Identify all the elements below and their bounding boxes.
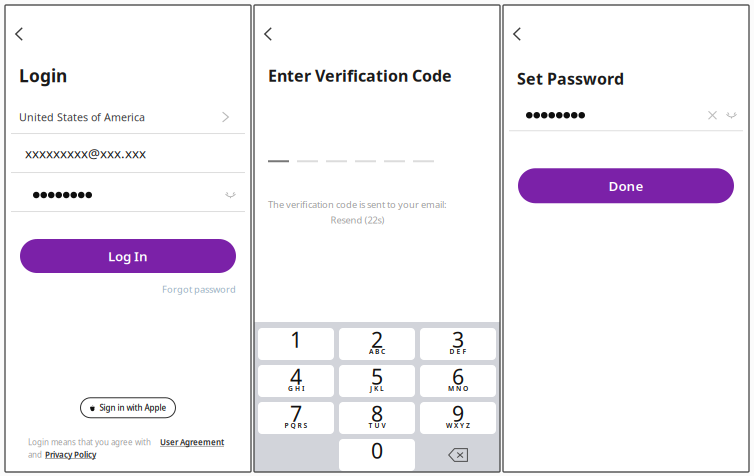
staticText: 0 bbox=[371, 436, 383, 465]
button[interactable]: Resend (22s) bbox=[330, 214, 384, 226]
staticText: 8 bbox=[371, 399, 383, 428]
staticText: The verification code is sent to your em… bbox=[268, 198, 447, 211]
staticText: 5 bbox=[371, 362, 383, 391]
button[interactable]: 7 bbox=[258, 402, 334, 434]
staticText: xxxxxxxxx@xxx.xxx bbox=[25, 144, 146, 162]
staticText: 9 bbox=[452, 399, 464, 428]
button[interactable]: Back bbox=[8, 24, 30, 44]
button[interactable]: Done bbox=[518, 168, 734, 203]
staticText: Log In bbox=[108, 247, 148, 265]
button[interactable]: United States of America bbox=[5, 101, 251, 134]
staticText: T U V bbox=[368, 421, 385, 430]
staticText: W X Y Z bbox=[446, 421, 470, 430]
button[interactable]: 9 bbox=[420, 402, 496, 434]
staticText: D E F bbox=[449, 347, 466, 356]
button[interactable]: Clear bbox=[708, 111, 717, 120]
staticText: Login means that you agree with bbox=[28, 437, 151, 447]
staticText: Sign in with Apple bbox=[99, 402, 166, 413]
staticText: 1 bbox=[290, 325, 302, 354]
button[interactable]: Forgot password bbox=[5, 280, 251, 298]
button[interactable]: Log In bbox=[20, 239, 236, 273]
button[interactable]: 5 bbox=[339, 365, 415, 397]
button[interactable]: Back bbox=[257, 24, 279, 44]
staticText: M N O bbox=[448, 384, 468, 393]
staticText: Login bbox=[19, 64, 67, 87]
staticText: A B C bbox=[369, 347, 385, 356]
staticText: User Agreement bbox=[160, 437, 224, 447]
staticText: and bbox=[28, 449, 42, 460]
button[interactable]: 2 bbox=[339, 328, 415, 360]
staticText: 4 bbox=[290, 362, 302, 391]
staticText: P Q R S bbox=[284, 421, 307, 430]
button[interactable]: 4 bbox=[258, 365, 334, 397]
staticText: Forgot password bbox=[162, 283, 236, 295]
staticText: Set Password bbox=[517, 68, 624, 89]
button[interactable]: Delete bbox=[420, 439, 496, 471]
button[interactable]: Sign in with Apple bbox=[80, 398, 175, 418]
button[interactable]: 1 bbox=[258, 328, 334, 360]
staticText: 2 bbox=[371, 325, 383, 354]
staticText: J K L bbox=[370, 384, 384, 393]
button[interactable]: Back bbox=[506, 24, 528, 44]
staticText: 7 bbox=[290, 399, 302, 428]
button[interactable]: 3 bbox=[420, 328, 496, 360]
button[interactable]: 8 bbox=[339, 402, 415, 434]
button[interactable]: 0 bbox=[339, 439, 415, 471]
staticText: 6 bbox=[452, 362, 464, 391]
staticText: United States of America bbox=[19, 110, 145, 124]
staticText: Resend (22s) bbox=[330, 214, 384, 226]
button[interactable]: 6 bbox=[420, 365, 496, 397]
staticText: Enter Verification Code bbox=[268, 65, 452, 86]
staticText: G H I bbox=[288, 384, 304, 393]
button[interactable]: Show password bbox=[726, 111, 737, 119]
staticText: Done bbox=[608, 177, 643, 195]
staticText: 3 bbox=[452, 325, 464, 354]
staticText: Privacy Policy bbox=[45, 449, 96, 460]
